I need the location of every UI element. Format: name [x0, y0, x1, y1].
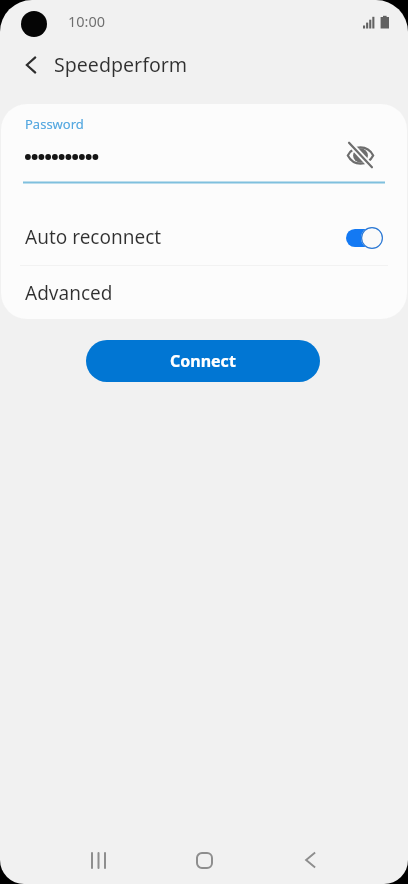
- staticText: Speedperform: [54, 51, 188, 78]
- button[interactable]: Back: [8, 42, 54, 88]
- staticText: Connect: [170, 350, 236, 372]
- button[interactable]: Advanced: [1, 266, 407, 319]
- button[interactable]: Password field: [15, 108, 325, 186]
- staticText: 10:00: [68, 11, 106, 31]
- button[interactable]: Recent apps: [72, 834, 124, 884]
- button[interactable]: Auto reconnect: [346, 227, 383, 249]
- button[interactable]: Auto reconnect: [1, 202, 407, 264]
- button[interactable]: Show password: [337, 132, 383, 178]
- staticText: Auto reconnect: [25, 224, 162, 250]
- button[interactable]: Connect: [86, 340, 320, 382]
- button[interactable]: Back: [284, 834, 336, 884]
- button[interactable]: Home: [178, 834, 230, 884]
- staticText: Advanced: [25, 280, 113, 306]
- staticText: Password: [25, 115, 84, 133]
